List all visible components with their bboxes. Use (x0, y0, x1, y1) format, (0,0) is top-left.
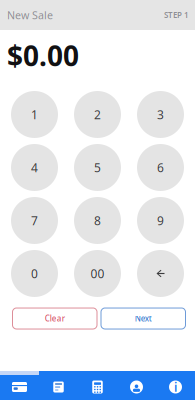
button[interactable]: Delete (136, 250, 184, 297)
staticText: 4 (31, 159, 38, 175)
button[interactable]: 7 (10, 197, 58, 244)
staticText: STEP 1 (164, 10, 189, 20)
button[interactable]: Receipts (39, 371, 78, 400)
staticText: 5 (94, 159, 101, 175)
staticText: 7 (31, 212, 38, 228)
staticText: 1 (31, 106, 38, 122)
button[interactable]: Charge (0, 371, 39, 400)
staticText: 00 (90, 265, 104, 281)
staticText: 3 (157, 106, 164, 122)
staticText: 8 (94, 212, 101, 228)
staticText: Next (135, 313, 152, 324)
staticText: i (174, 379, 177, 395)
button[interactable]: Calculator (78, 371, 117, 400)
button[interactable]: 6 (136, 144, 184, 191)
button[interactable]: Next (101, 308, 185, 329)
button[interactable]: Clear (12, 308, 97, 329)
staticText: 6 (157, 159, 164, 175)
staticText: 9 (157, 212, 164, 228)
button[interactable]: 5 (73, 144, 121, 191)
staticText: $0.00 (7, 37, 79, 74)
button[interactable]: 9 (136, 197, 184, 244)
button[interactable]: Account (117, 371, 156, 400)
staticText: Clear (45, 313, 65, 324)
button[interactable]: 8 (73, 197, 121, 244)
staticText: 2 (94, 106, 101, 122)
button[interactable]: 0 (10, 250, 58, 297)
button[interactable]: 00 (73, 250, 121, 297)
button[interactable]: Info (156, 371, 195, 400)
button[interactable]: 1 (10, 91, 58, 138)
button[interactable]: 4 (10, 144, 58, 191)
staticText: 0 (31, 265, 38, 281)
button[interactable]: 2 (73, 91, 121, 138)
button[interactable]: 3 (136, 91, 184, 138)
staticText: New Sale (7, 8, 53, 22)
